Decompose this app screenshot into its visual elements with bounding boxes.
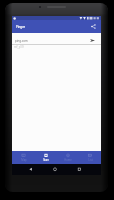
button[interactable]: List [79,151,101,164]
button[interactable]: Home [49,164,60,175]
button[interactable]: Scan [35,151,57,164]
button[interactable]: Home [57,151,79,164]
button[interactable]: ping.com [12,33,101,44]
button[interactable]: Recents [73,164,84,175]
staticText: Pinger [16,25,26,29]
staticText: Scan [43,158,49,162]
staticText: Home [64,158,72,162]
button[interactable]: Back [26,164,37,175]
button[interactable]: Share [88,21,99,32]
button[interactable]: Send [90,38,95,43]
staticText: ping.com [15,39,28,43]
button[interactable]: Map [12,151,35,164]
staticText: Map [21,158,27,162]
staticText: List [88,158,93,162]
staticText: ref_p19 [14,45,24,49]
